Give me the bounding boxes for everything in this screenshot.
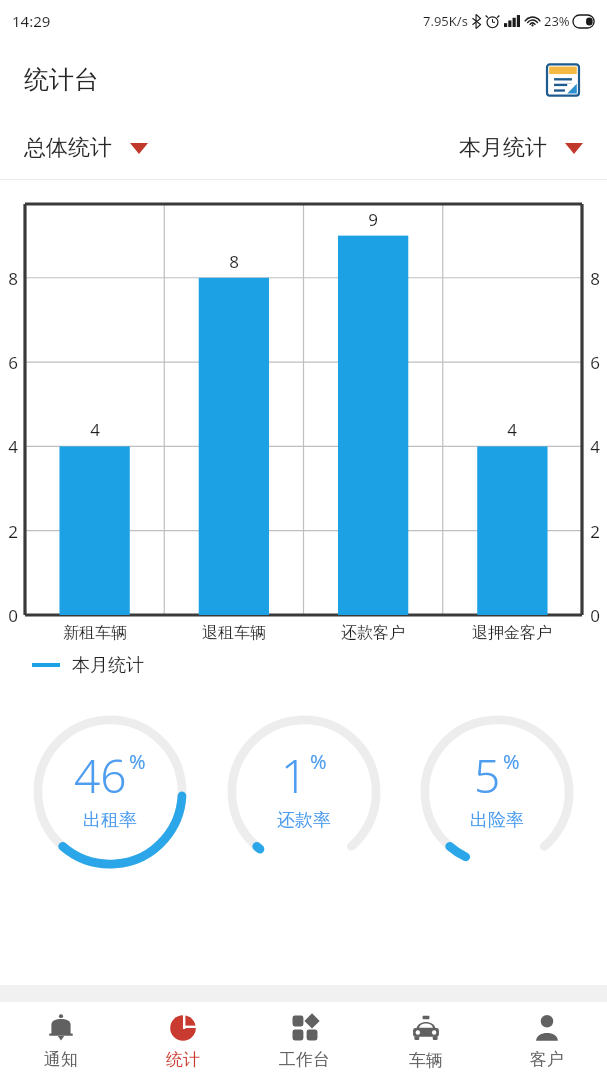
staticText: 新租车辆 bbox=[25, 623, 165, 643]
staticText: 1 bbox=[281, 744, 308, 807]
staticText: % bbox=[310, 748, 327, 775]
staticText: 还款客户 bbox=[303, 623, 443, 643]
staticText: 8 bbox=[214, 250, 254, 273]
button[interactable]: Report bbox=[539, 56, 587, 104]
staticText: 5 bbox=[474, 744, 501, 807]
staticText: % bbox=[503, 748, 520, 775]
staticText: 还款率 bbox=[277, 809, 331, 832]
staticText: 46 bbox=[74, 744, 127, 807]
staticText: 8 bbox=[588, 267, 602, 290]
button[interactable]: 通知 bbox=[0, 1002, 122, 1080]
button[interactable]: 46 bbox=[26, 708, 194, 876]
staticText: 4 bbox=[588, 435, 602, 458]
button[interactable]: 客户 bbox=[486, 1002, 607, 1080]
staticText: 14:29 bbox=[12, 11, 51, 31]
button[interactable]: 1 bbox=[220, 708, 388, 876]
staticText: 7.95K/s bbox=[423, 12, 468, 30]
staticText: 统计 bbox=[166, 1049, 200, 1070]
staticText: 0 bbox=[6, 604, 20, 627]
staticText: 4 bbox=[75, 418, 115, 441]
staticText: 总体统计 bbox=[24, 134, 112, 162]
button[interactable]: 车辆 bbox=[365, 1002, 486, 1080]
staticText: 2 bbox=[588, 520, 602, 543]
staticText: 6 bbox=[6, 351, 20, 374]
button[interactable]: 本月统计 bbox=[459, 134, 583, 162]
button[interactable]: 统计 bbox=[122, 1002, 244, 1080]
staticText: 2 bbox=[6, 520, 20, 543]
staticText: 统计台 bbox=[24, 64, 99, 95]
staticText: 6 bbox=[588, 351, 602, 374]
staticText: 8 bbox=[6, 267, 20, 290]
staticText: 4 bbox=[492, 418, 532, 441]
staticText: 车辆 bbox=[409, 1050, 443, 1071]
staticText: 通知 bbox=[44, 1049, 78, 1070]
staticText: 工作台 bbox=[279, 1049, 330, 1070]
staticText: 出租率 bbox=[83, 809, 137, 832]
staticText: 4 bbox=[6, 435, 20, 458]
staticText: % bbox=[129, 748, 146, 775]
staticText: 本月统计 bbox=[459, 134, 547, 162]
staticText: 退租车辆 bbox=[164, 623, 304, 643]
staticText: 出险率 bbox=[470, 809, 524, 832]
button[interactable]: 5 bbox=[413, 708, 581, 876]
staticText: 客户 bbox=[530, 1049, 564, 1070]
staticText: 9 bbox=[353, 208, 393, 231]
staticText: 退押金客户 bbox=[442, 623, 582, 643]
button[interactable]: 总体统计 bbox=[24, 134, 148, 162]
staticText: 23% bbox=[544, 12, 570, 30]
staticText: 0 bbox=[588, 604, 602, 627]
button[interactable]: 工作台 bbox=[244, 1002, 365, 1080]
staticText: 本月统计 bbox=[72, 654, 144, 677]
